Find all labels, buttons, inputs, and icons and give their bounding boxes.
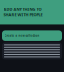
button[interactable]: Create a new collection	[2, 30, 62, 41]
staticText: Create a new collection	[4, 34, 39, 37]
staticText: SHARE WITH PEOPLE	[3, 12, 42, 17]
staticText: ADD ANYTHING TO	[3, 6, 41, 12]
